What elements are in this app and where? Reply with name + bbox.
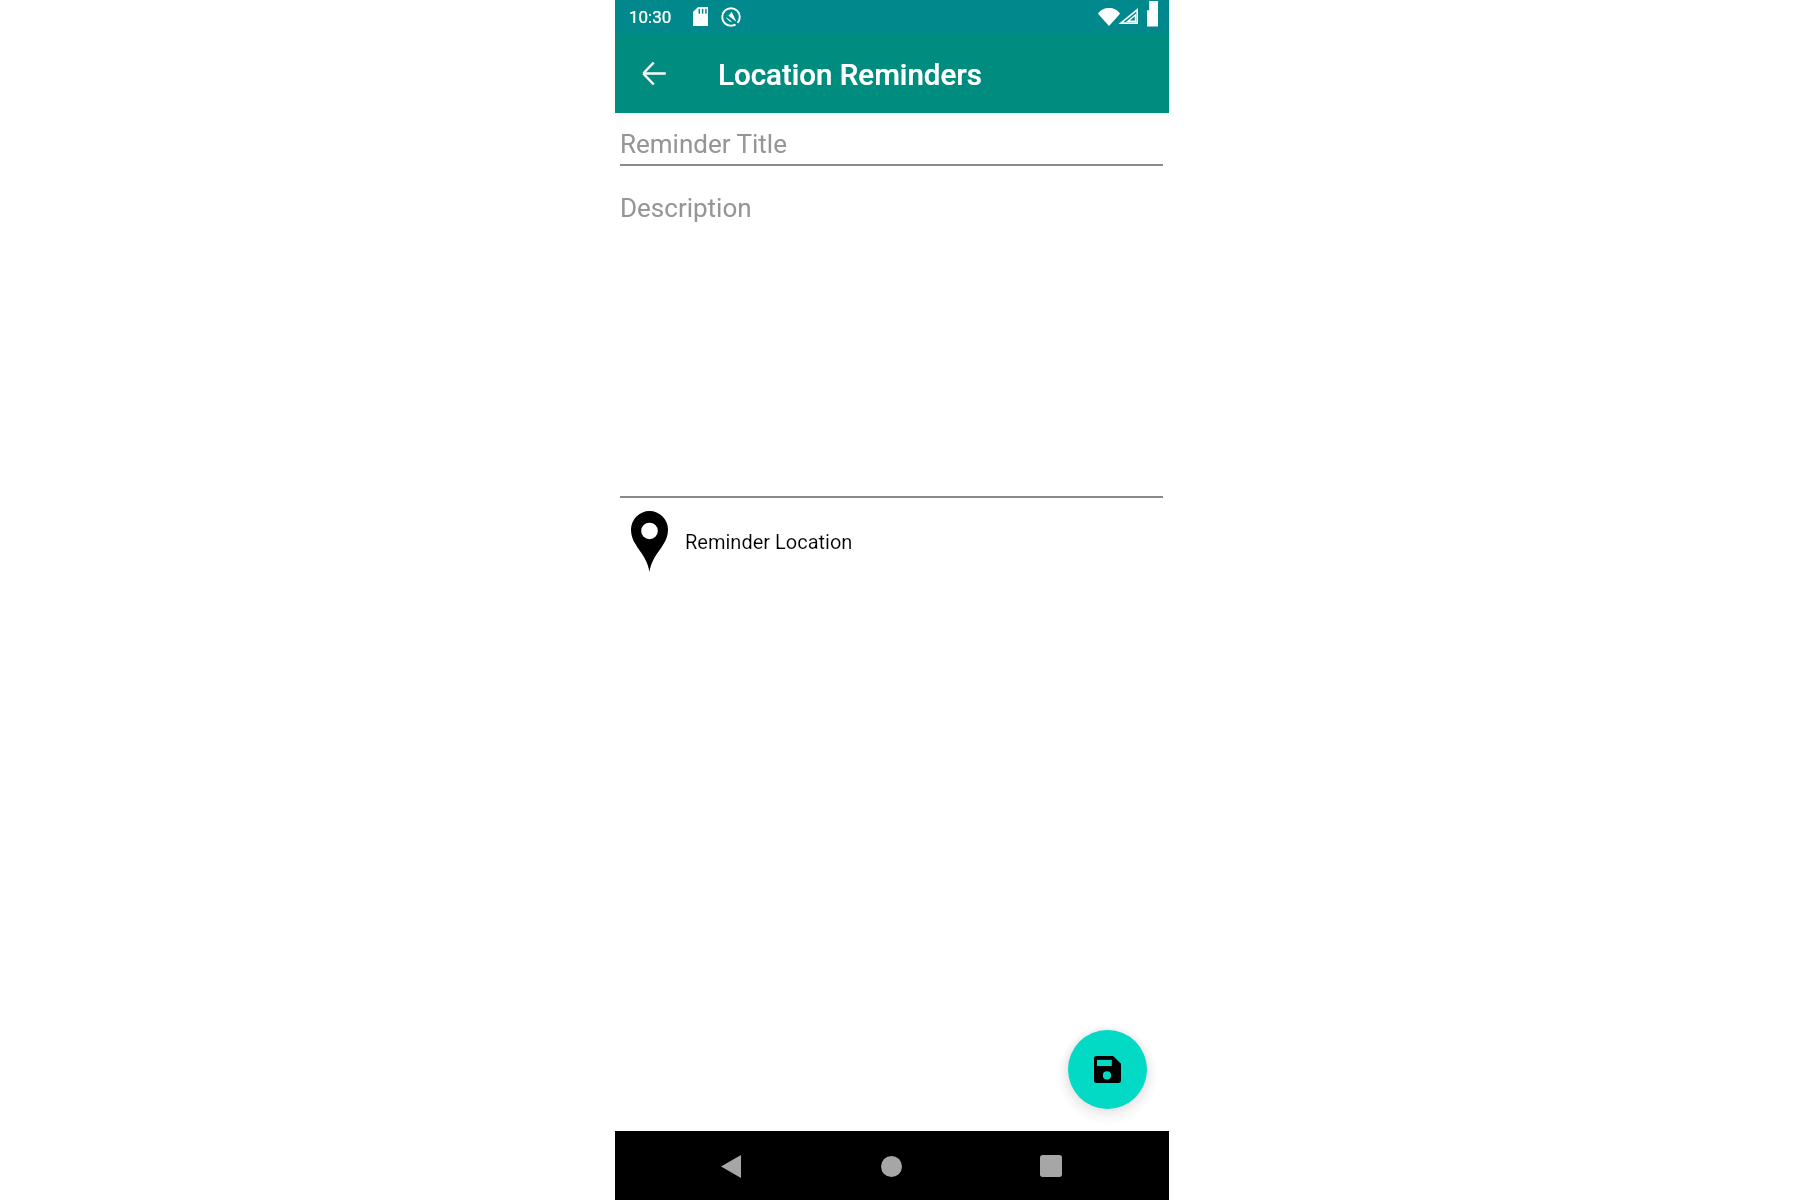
button[interactable]: Description	[620, 184, 1163, 498]
button[interactable]: Back	[630, 49, 678, 97]
button[interactable]: Back	[721, 1155, 741, 1178]
staticText: Reminder Location	[685, 530, 853, 553]
staticText: Description	[620, 193, 752, 223]
button[interactable]: Reminder Location	[615, 505, 1169, 577]
button[interactable]: Recent apps	[1040, 1155, 1062, 1177]
staticText: Location Reminders	[718, 58, 982, 93]
button[interactable]: Save reminder	[1068, 1030, 1147, 1109]
staticText: Reminder Title	[620, 129, 787, 159]
staticText: 10:30	[629, 7, 672, 27]
button[interactable]: Reminder Title	[620, 120, 1163, 166]
button[interactable]: Home	[881, 1156, 902, 1177]
